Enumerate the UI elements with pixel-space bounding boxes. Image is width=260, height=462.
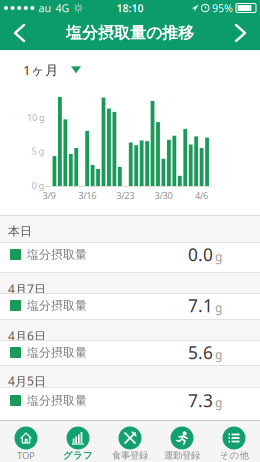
staticText: 5 g — [31, 145, 44, 157]
staticText: 4/6 — [195, 189, 208, 202]
button[interactable]: 運動登録 — [156, 421, 208, 462]
staticText: 塩分摂取量 — [27, 393, 87, 408]
staticText: 0 g — [31, 179, 44, 192]
staticText: グラフ — [63, 450, 93, 461]
staticText: 3/23 — [116, 189, 134, 202]
staticText: 塩分摂取量の推移 — [66, 23, 194, 43]
staticText: 1ヶ月 — [23, 61, 58, 79]
staticText: 3/9 — [42, 189, 55, 202]
staticText: 本日 — [8, 224, 32, 239]
staticText: g — [215, 395, 222, 410]
button[interactable]: TOP — [0, 421, 52, 462]
staticText: 塩分摂取量 — [27, 345, 87, 360]
staticText: 塩分摂取量 — [27, 298, 87, 313]
staticText: 7.3 — [188, 389, 213, 412]
staticText: 運動登録 — [164, 450, 200, 461]
staticText: その他 — [219, 450, 248, 461]
button[interactable]: 食事登録 — [104, 421, 156, 462]
staticText: 塩分摂取量 — [27, 247, 87, 262]
staticText: 0.0 — [188, 243, 213, 266]
staticText: 5.6 — [188, 341, 213, 364]
staticText: 3/16 — [78, 189, 96, 202]
button[interactable]: Previous — [0, 16, 34, 50]
staticText: 10 g — [27, 111, 45, 124]
staticText: TOP — [17, 449, 35, 462]
button[interactable]: その他 — [208, 421, 260, 462]
staticText: 18:10 — [116, 1, 143, 15]
button[interactable]: 1ヶ月 — [0, 50, 81, 79]
staticText: 4G — [55, 1, 69, 15]
staticText: 4月7日 — [8, 281, 46, 293]
staticText: g — [215, 300, 222, 315]
staticText: 4月5日 — [8, 373, 46, 387]
staticText: 4月6日 — [8, 328, 46, 340]
staticText: 食事登録 — [112, 450, 148, 461]
staticText: g — [215, 249, 222, 264]
staticText: 95% — [212, 1, 233, 15]
button[interactable]: グラフ — [52, 421, 104, 462]
staticText: 7.1 — [188, 294, 213, 317]
staticText: g — [215, 347, 222, 362]
staticText: au — [38, 1, 51, 15]
button[interactable]: Next — [226, 16, 260, 50]
staticText: 3/30 — [154, 189, 172, 202]
